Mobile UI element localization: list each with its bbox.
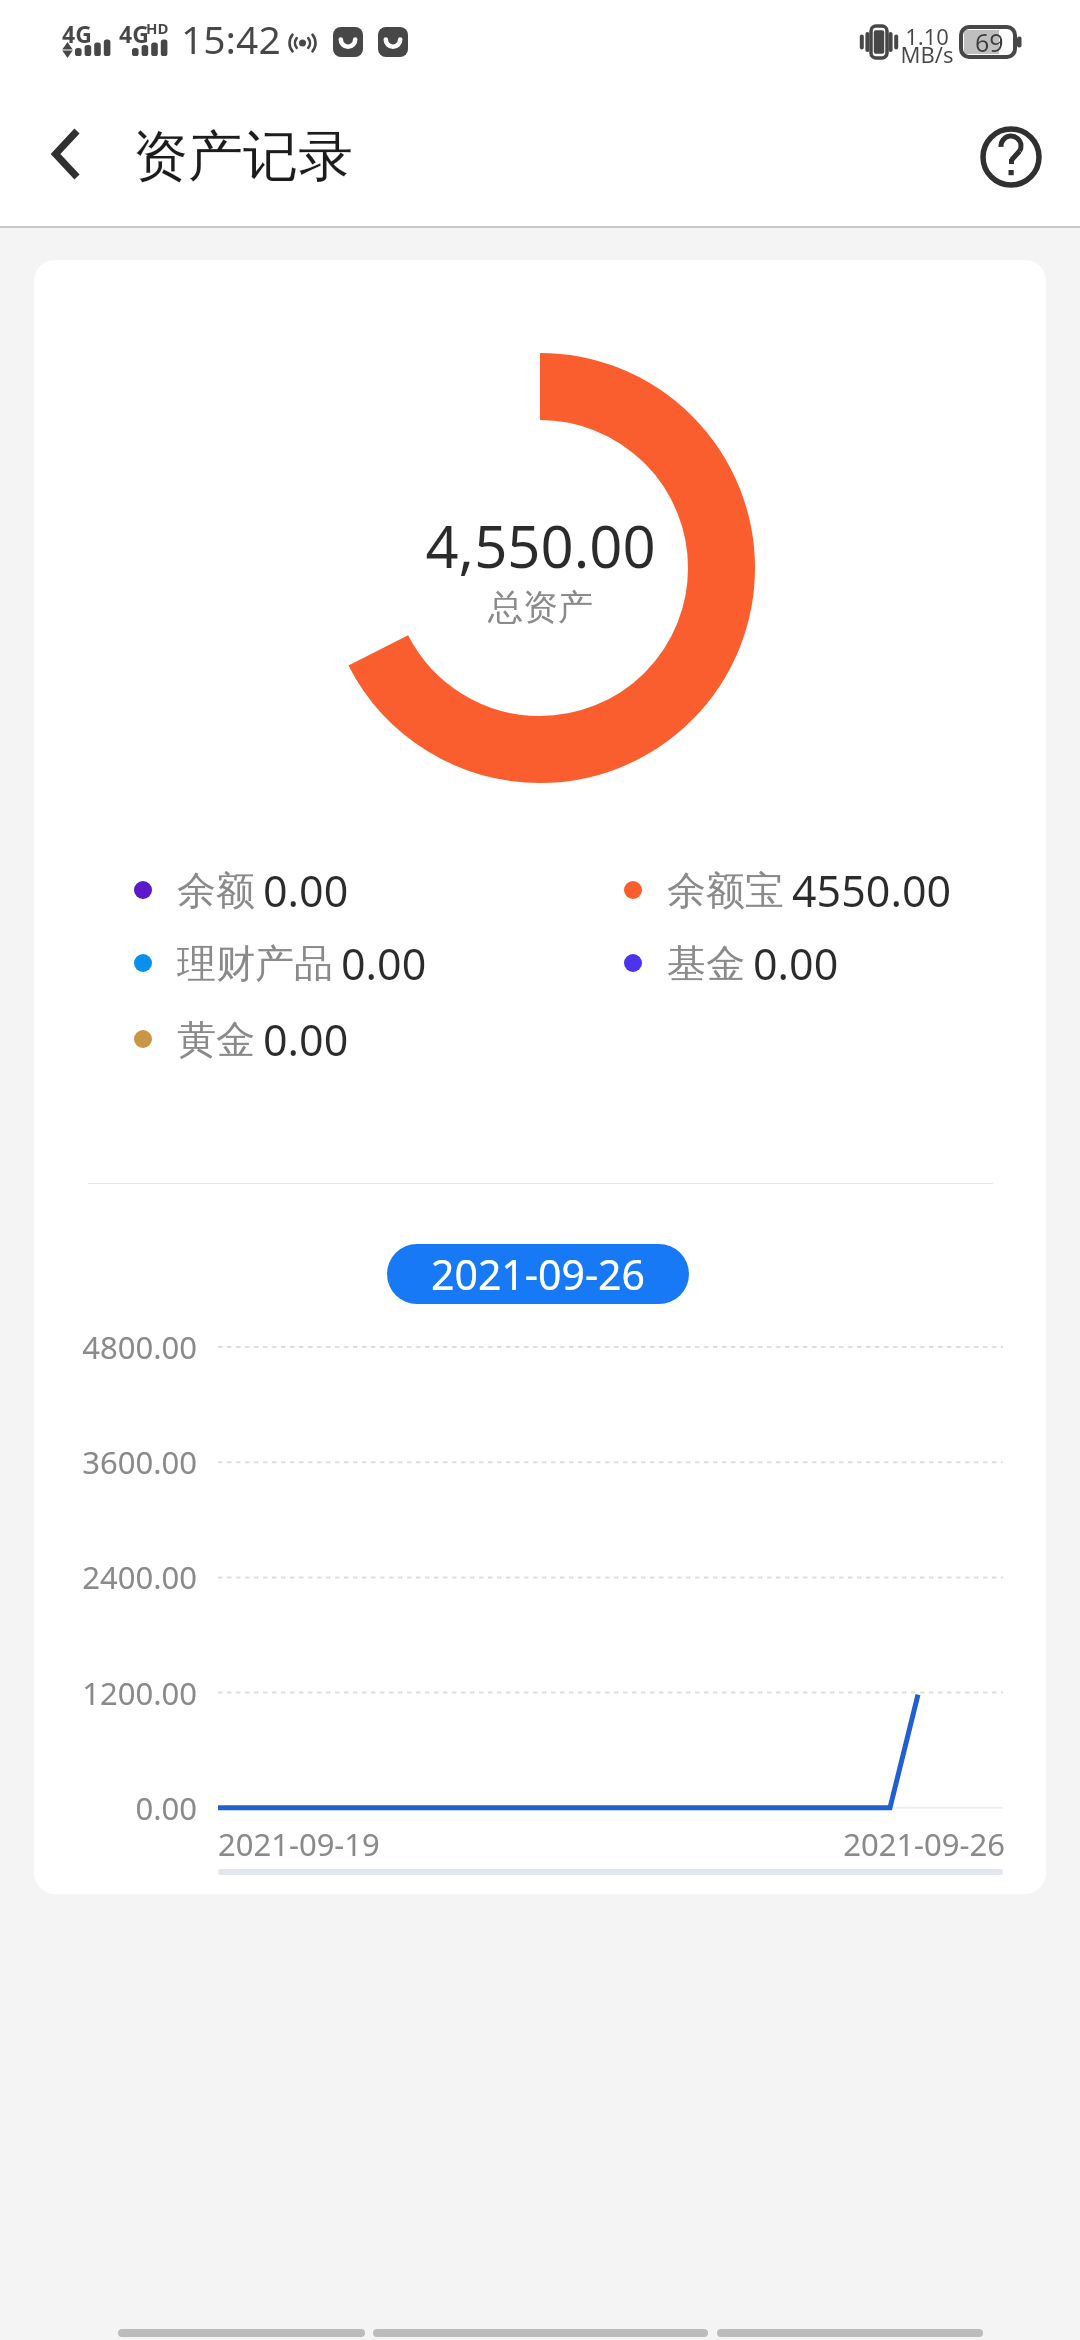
staticText: HD (146, 18, 169, 38)
staticText: 0.00 (753, 934, 839, 993)
staticText: 理财产品 (177, 939, 333, 988)
staticText: 基金 (667, 939, 745, 988)
button[interactable]: Back (26, 121, 106, 201)
button[interactable]: 基金 (621, 933, 839, 993)
button[interactable]: 黄金 (131, 1009, 349, 1069)
button[interactable]: 2021-09-26 (387, 1244, 689, 1304)
staticText: 余额宝 (667, 866, 784, 915)
staticText: MB/s (896, 39, 958, 69)
staticText: 0.00 (341, 934, 427, 993)
staticText: 1200.00 (36, 1672, 197, 1714)
staticText: 2021-09-19 (218, 1823, 380, 1865)
staticText: 1.10 (896, 21, 958, 51)
staticText: 2400.00 (36, 1556, 197, 1598)
staticText: 黄金 (177, 1015, 255, 1064)
staticText: 余额 (177, 866, 255, 915)
staticText: 2021-09-26 (431, 1246, 646, 1302)
staticText: 4550.00 (792, 861, 952, 920)
staticText: 4,550.00 (425, 506, 656, 585)
staticText: 0.00 (36, 1787, 197, 1829)
staticText: 2021-09-26 (811, 1823, 1005, 1865)
staticText: 15:42 (181, 12, 281, 65)
button[interactable]: Help (973, 123, 1049, 199)
button[interactable]: 理财产品 (131, 933, 427, 993)
staticText: 0.00 (263, 861, 349, 920)
staticText: 0.00 (263, 1010, 349, 1069)
button[interactable]: 余额 (131, 860, 349, 920)
button[interactable]: 余额宝 (621, 860, 952, 920)
staticText: 资产记录 (133, 122, 353, 191)
staticText: 3600.00 (36, 1441, 197, 1483)
staticText: 69 (975, 25, 1004, 57)
staticText: 总资产 (488, 585, 593, 629)
staticText: 4G (62, 18, 92, 49)
staticText: 4800.00 (36, 1326, 197, 1368)
staticText: 4G (119, 18, 149, 49)
